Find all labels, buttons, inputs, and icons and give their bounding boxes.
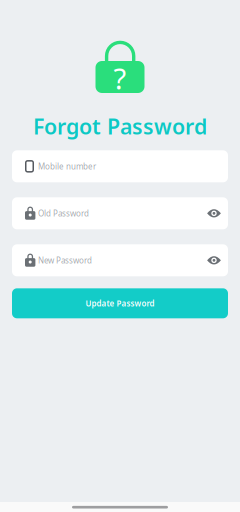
staticText: Forgot Password — [33, 112, 207, 140]
staticText: Update Password — [85, 298, 154, 309]
button[interactable]: Show old password — [207, 203, 221, 223]
staticText: Mobile number — [38, 161, 96, 172]
staticText: Old Password — [38, 208, 89, 219]
button[interactable]: Update Password — [12, 288, 228, 318]
staticText: ? — [113, 58, 126, 97]
button[interactable]: Show new password — [207, 250, 221, 270]
staticText: New Password — [38, 255, 92, 266]
